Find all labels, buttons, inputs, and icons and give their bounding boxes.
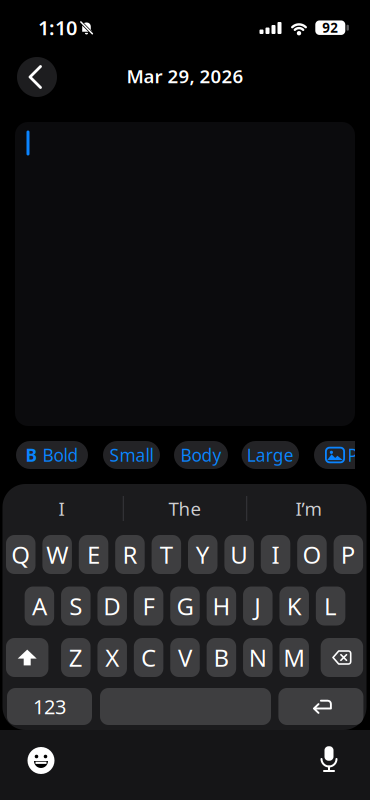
staticText: J: [254, 590, 261, 622]
button[interactable]: C: [134, 638, 163, 677]
staticText: Z: [69, 642, 83, 673]
button[interactable]: V: [170, 638, 200, 677]
staticText: 1:10: [38, 14, 77, 41]
staticText: R: [122, 539, 137, 570]
staticText: N: [249, 642, 267, 673]
staticText: M: [283, 642, 305, 673]
button[interactable]: O: [297, 535, 327, 574]
button[interactable]: [26, 745, 56, 775]
button[interactable]: H: [207, 586, 236, 625]
button[interactable]: [6, 638, 48, 677]
button[interactable]: Z: [61, 638, 90, 677]
button[interactable]: R: [115, 535, 145, 574]
button[interactable]: W: [42, 535, 72, 574]
staticText: Y: [196, 539, 210, 570]
button[interactable]: N: [243, 638, 273, 677]
staticText: K: [287, 590, 302, 622]
button[interactable]: Large: [242, 441, 299, 469]
button[interactable]: 123: [7, 688, 92, 725]
button[interactable]: I: [261, 535, 290, 574]
staticText: B: [213, 642, 229, 673]
staticText: X: [105, 642, 119, 673]
staticText: D: [103, 590, 121, 622]
staticText: 92: [322, 19, 338, 36]
button[interactable]: P: [334, 535, 363, 574]
button[interactable]: B: [207, 638, 236, 677]
staticText: Small: [109, 443, 153, 466]
button[interactable]: K: [279, 586, 309, 625]
button[interactable]: U: [224, 535, 254, 574]
button[interactable]: [314, 746, 344, 776]
staticText: Q: [11, 539, 30, 570]
button[interactable]: [17, 57, 57, 97]
staticText: V: [178, 642, 192, 673]
button[interactable]: M: [279, 638, 309, 677]
staticText: O: [302, 539, 321, 570]
staticText: L: [324, 590, 337, 622]
staticText: B: [25, 443, 37, 466]
button[interactable]: Photo: [314, 441, 370, 469]
staticText: I: [271, 539, 279, 570]
button[interactable]: [100, 688, 271, 725]
staticText: S: [69, 590, 82, 622]
staticText: The: [168, 496, 201, 521]
button[interactable]: [278, 688, 363, 725]
staticText: Mar 29, 2026: [126, 64, 243, 88]
staticText: I: [59, 496, 65, 521]
button[interactable]: S: [61, 586, 90, 625]
button[interactable]: Small: [103, 441, 160, 469]
button[interactable]: I: [7, 493, 117, 523]
staticText: Photo: [347, 443, 370, 466]
button[interactable]: E: [79, 535, 108, 574]
button[interactable]: B: [16, 441, 88, 469]
button[interactable]: Q: [6, 535, 35, 574]
staticText: Large: [247, 443, 294, 466]
staticText: T: [160, 539, 173, 570]
button[interactable]: The: [130, 493, 240, 523]
staticText: U: [230, 539, 248, 570]
button[interactable]: I’m: [253, 493, 363, 523]
staticText: A: [32, 590, 47, 622]
button[interactable]: [321, 638, 363, 677]
staticText: H: [212, 590, 230, 622]
staticText: I’m: [295, 496, 321, 521]
staticText: 123: [33, 693, 66, 720]
button[interactable]: X: [97, 638, 127, 677]
button[interactable]: J: [243, 586, 272, 625]
button[interactable]: F: [134, 586, 163, 625]
button[interactable]: T: [152, 535, 181, 574]
staticText: Bold: [42, 443, 78, 466]
staticText: G: [176, 590, 193, 622]
staticText: C: [141, 642, 156, 673]
button[interactable]: Y: [188, 535, 217, 574]
staticText: W: [46, 539, 68, 570]
staticText: P: [341, 539, 356, 570]
button[interactable]: Body: [174, 441, 228, 469]
staticText: F: [143, 590, 155, 622]
staticText: E: [87, 539, 100, 570]
staticText: Body: [180, 443, 221, 466]
button[interactable]: D: [97, 586, 127, 625]
button[interactable]: G: [170, 586, 200, 625]
button[interactable]: A: [25, 586, 54, 625]
button[interactable]: L: [316, 586, 345, 625]
